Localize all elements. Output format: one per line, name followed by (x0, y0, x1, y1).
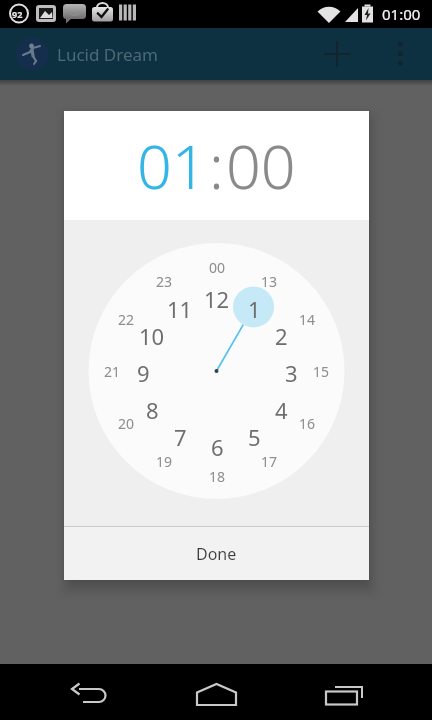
staticText: 22 (118, 310, 135, 329)
button[interactable]: 3 (269, 358, 313, 384)
staticText: : (209, 124, 224, 207)
button[interactable] (380, 34, 420, 74)
staticText: 7 (174, 422, 187, 448)
button[interactable] (308, 674, 380, 714)
button[interactable]: 21 (90, 358, 134, 384)
button[interactable]: 5 (232, 422, 276, 448)
button[interactable]: 14 (285, 306, 329, 332)
staticText: Lucid Dream (57, 43, 158, 66)
button[interactable]: 23 (142, 268, 186, 294)
staticText: 9 (137, 358, 150, 384)
button[interactable]: 17 (247, 448, 291, 474)
button[interactable]: 10 (130, 321, 174, 347)
staticText: 01:00 (382, 4, 421, 24)
staticText: 13 (261, 272, 278, 291)
staticText: 20 (118, 414, 135, 433)
button[interactable]: 2 (259, 321, 303, 347)
staticText: 00 (209, 258, 226, 277)
staticText: 6 (211, 432, 224, 458)
button[interactable]: 20 (104, 410, 148, 436)
staticText: 4 (275, 395, 288, 421)
staticText: 10 (139, 321, 165, 347)
button[interactable]: 1 (232, 294, 276, 320)
staticText: Done (196, 543, 237, 565)
button[interactable]: 9 (121, 358, 165, 384)
staticText: 18 (209, 467, 226, 486)
button[interactable] (180, 674, 252, 714)
staticText: 1 (248, 294, 261, 320)
button[interactable]: 22 (104, 306, 148, 332)
button[interactable] (313, 30, 361, 78)
button[interactable]: 12 (195, 284, 239, 310)
button[interactable]: Done (64, 527, 369, 580)
staticText: 12 (204, 284, 230, 310)
staticText: 19 (156, 452, 173, 471)
button[interactable]: 6 (195, 432, 239, 458)
staticText: 14 (299, 310, 316, 329)
button[interactable]: 19 (142, 448, 186, 474)
staticText: 16 (299, 414, 316, 433)
staticText: 2 (275, 321, 288, 347)
button[interactable] (54, 674, 126, 714)
staticText: 21 (104, 362, 121, 381)
staticText: 01 (137, 124, 207, 207)
button[interactable]: 11 (158, 294, 202, 320)
staticText: 11 (167, 294, 193, 320)
staticText: 5 (248, 422, 261, 448)
button[interactable]: 8 (130, 395, 174, 421)
button[interactable]: 13 (247, 268, 291, 294)
staticText: 23 (156, 272, 173, 291)
button[interactable]: 7 (158, 422, 202, 448)
button[interactable]: 18 (195, 463, 239, 489)
staticText: 00 (226, 124, 296, 207)
button[interactable]: 00 (195, 254, 239, 280)
staticText: 92 (12, 8, 23, 20)
button[interactable]: 16 (285, 410, 329, 436)
button[interactable]: 15 (299, 358, 343, 384)
staticText: 8 (146, 395, 159, 421)
staticText: 3 (285, 358, 298, 384)
staticText: 17 (261, 452, 278, 471)
staticText: 15 (313, 362, 330, 381)
button[interactable]: 4 (259, 395, 303, 421)
